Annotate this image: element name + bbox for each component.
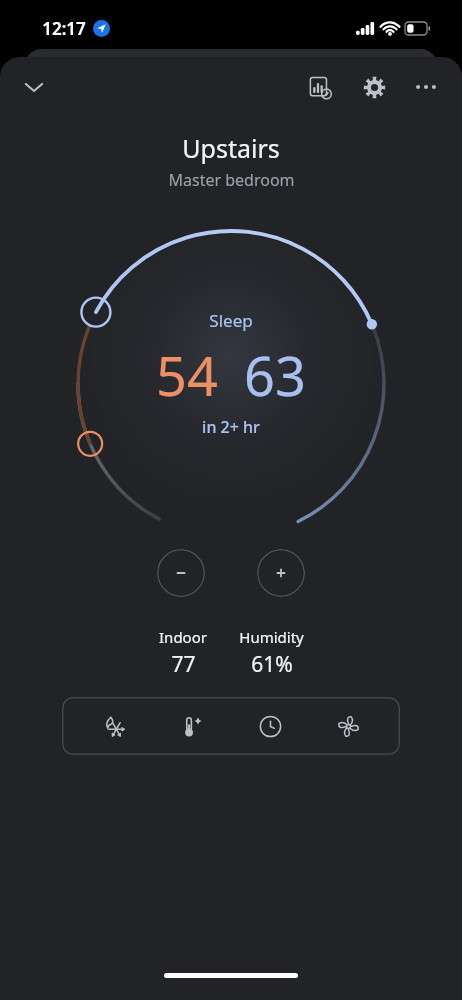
staticText: Sleep (209, 309, 253, 332)
button[interactable]: Fan (322, 700, 374, 752)
button[interactable]: Heat cool mode (88, 700, 140, 752)
button[interactable]: Collapse (12, 65, 56, 109)
staticText: 12:17 (42, 17, 86, 40)
staticText: 54 (156, 338, 218, 412)
button[interactable]: Schedule (244, 700, 296, 752)
staticText: Humidity (239, 627, 304, 647)
staticText: Upstairs (182, 131, 280, 165)
staticText: 61% (251, 650, 293, 679)
button[interactable]: Temperature preferences (166, 700, 218, 752)
button[interactable]: Energy history (298, 65, 342, 109)
staticText: 63 (244, 338, 306, 412)
button[interactable]: Increase temperature (257, 549, 305, 597)
button[interactable]: Settings (352, 65, 396, 109)
staticText: in 2+ hr (202, 416, 260, 438)
staticText: Indoor (159, 627, 207, 647)
button[interactable]: More options (404, 65, 448, 109)
staticText: Master bedroom (168, 169, 295, 191)
button[interactable]: Decrease temperature (157, 549, 205, 597)
staticText: 77 (171, 650, 196, 679)
